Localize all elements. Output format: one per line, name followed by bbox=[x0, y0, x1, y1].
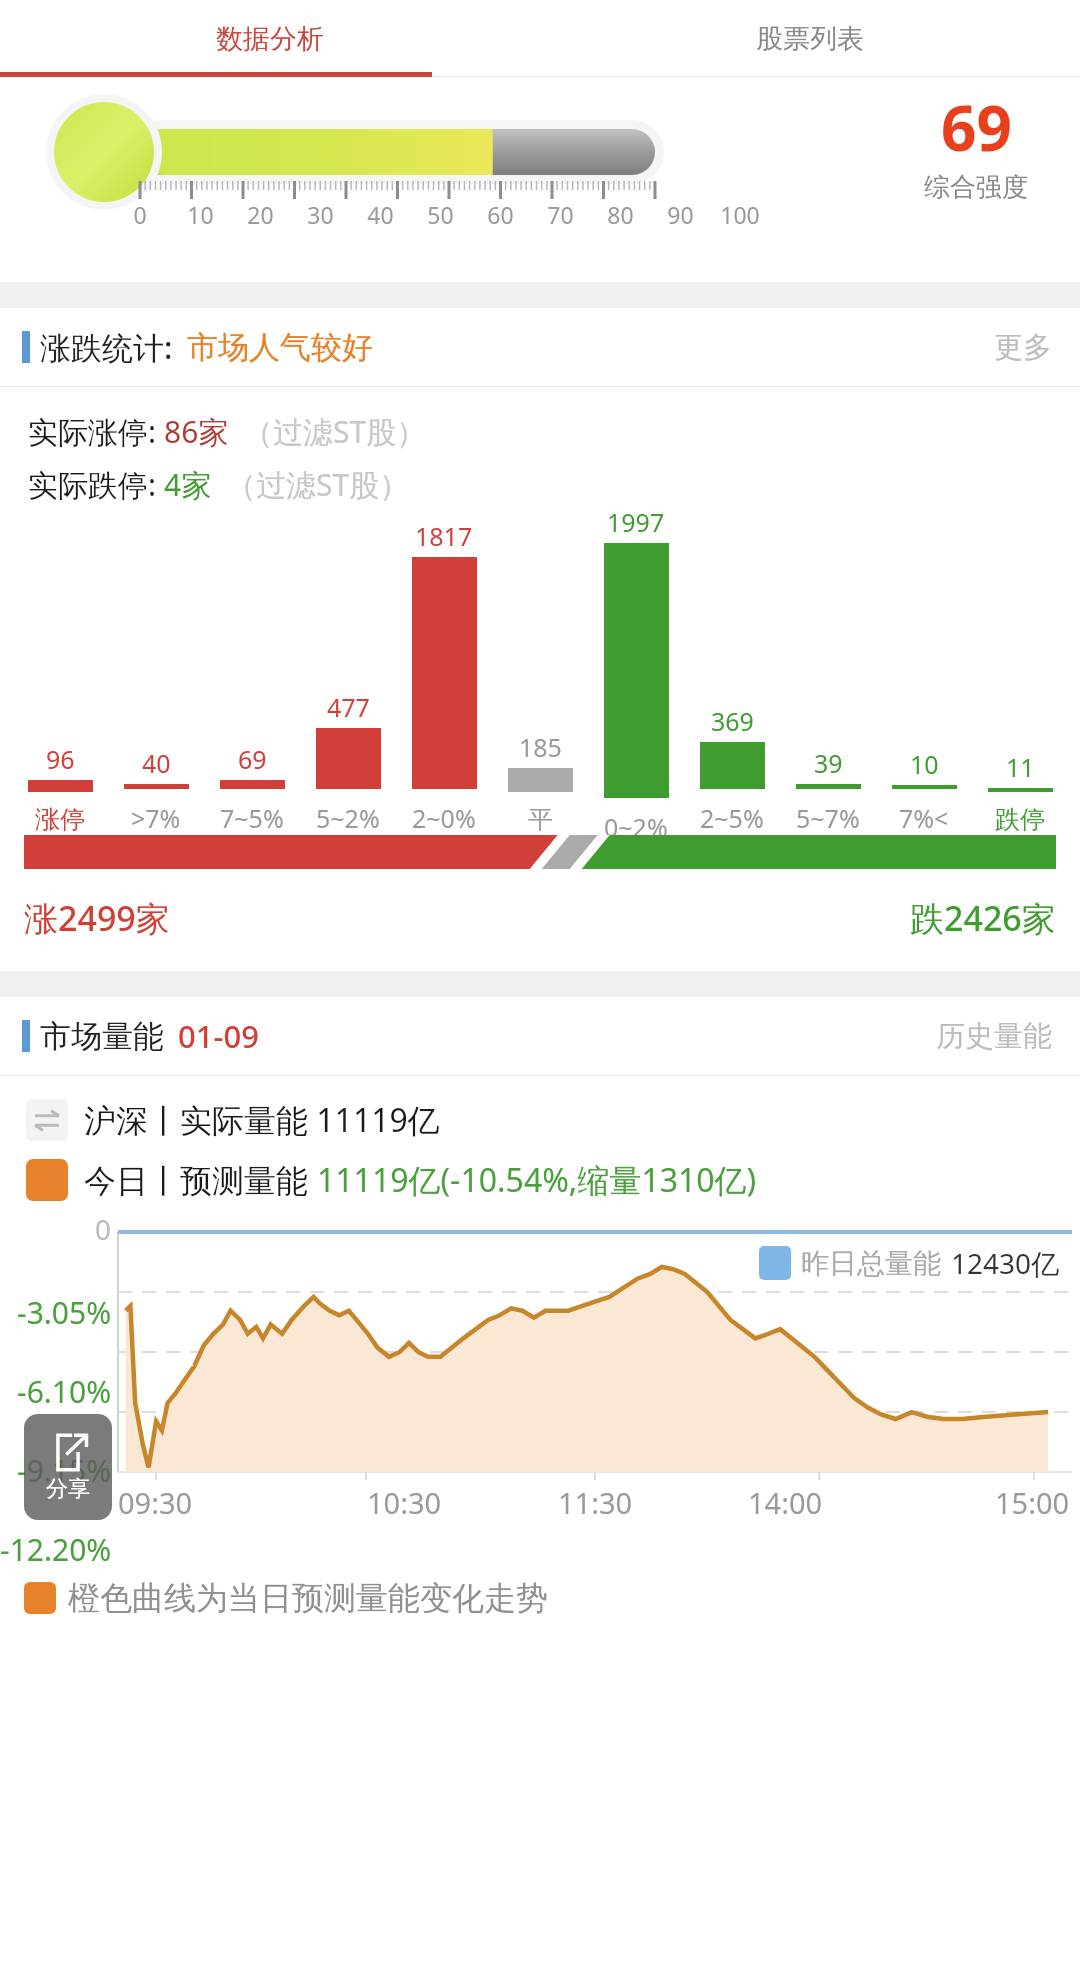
staticText: 2~0% bbox=[412, 801, 476, 835]
button[interactable]: 数据分析 bbox=[0, 0, 540, 77]
staticText: 1997 bbox=[607, 505, 665, 539]
staticText: 橙色曲线为当日预测量能变化走势 bbox=[68, 1578, 548, 1618]
button[interactable]: 1997 bbox=[588, 505, 684, 835]
staticText: 5~2% bbox=[316, 801, 380, 835]
staticText: 11 bbox=[1006, 750, 1035, 784]
staticText: 今日丨预测量能 bbox=[84, 1158, 317, 1202]
staticText: 10 bbox=[187, 199, 214, 230]
staticText: 4家 bbox=[164, 464, 212, 505]
staticText: 综合强度 bbox=[924, 171, 1028, 204]
staticText: 86家 bbox=[164, 411, 229, 452]
button[interactable]: 10 bbox=[876, 505, 972, 835]
staticText: -3.05% bbox=[17, 1292, 112, 1333]
staticText: 市场量能 bbox=[40, 1017, 164, 1056]
staticText: 60 bbox=[487, 199, 514, 230]
staticText: 39 bbox=[814, 746, 843, 780]
staticText: 369 bbox=[711, 704, 754, 738]
staticText: 1817 bbox=[415, 519, 473, 553]
staticText: 30 bbox=[307, 199, 334, 230]
staticText: 100 bbox=[720, 199, 760, 230]
button[interactable]: 历史量能 bbox=[930, 1012, 1058, 1061]
staticText: 10 bbox=[910, 747, 939, 781]
button[interactable]: 1817 bbox=[396, 505, 492, 835]
button[interactable]: 11 bbox=[972, 505, 1068, 835]
staticText: 股票列表 bbox=[756, 22, 864, 56]
button[interactable]: 477 bbox=[300, 505, 396, 835]
button[interactable]: 96 bbox=[12, 505, 108, 835]
staticText: 涨停 bbox=[35, 804, 85, 835]
button[interactable]: 股票列表 bbox=[540, 0, 1080, 77]
staticText: 历史量能 bbox=[936, 1018, 1052, 1055]
staticText: -9.15% bbox=[17, 1450, 112, 1491]
staticText: 7~5% bbox=[220, 801, 284, 835]
staticText: 0 bbox=[95, 1210, 112, 1248]
staticText: 80 bbox=[607, 199, 634, 230]
staticText: 5~7% bbox=[796, 801, 860, 835]
staticText: 实际跌停: bbox=[28, 464, 164, 505]
staticText: 69 bbox=[941, 85, 1012, 169]
staticText: 40 bbox=[367, 199, 394, 230]
staticText: 0 bbox=[133, 199, 147, 230]
staticText: 7%< bbox=[899, 801, 949, 835]
button[interactable]: 69 bbox=[204, 505, 300, 835]
staticText: 90 bbox=[667, 199, 694, 230]
staticText: 分享 bbox=[46, 1475, 90, 1503]
staticText: 平 bbox=[528, 804, 553, 835]
staticText: 96 bbox=[46, 742, 75, 776]
staticText: 01-09 bbox=[178, 1015, 259, 1057]
button[interactable]: 185 bbox=[492, 505, 588, 835]
staticText: 50 bbox=[427, 199, 454, 230]
staticText: 实际涨停: bbox=[28, 411, 164, 452]
staticText: 11119亿(-10.54%,缩量1310亿) bbox=[317, 1158, 757, 1202]
staticText: 185 bbox=[519, 730, 562, 764]
button[interactable]: 分享 bbox=[24, 1414, 112, 1520]
staticText: 数据分析 bbox=[216, 22, 324, 56]
staticText: 11:30 bbox=[558, 1483, 633, 1522]
staticText: 0~2% bbox=[604, 810, 668, 835]
staticText: 涨跌统计: bbox=[40, 326, 173, 368]
staticText: 40 bbox=[142, 746, 171, 780]
staticText: -12.20% bbox=[0, 1529, 112, 1570]
button[interactable]: 沪深丨实际量能 11119亿 bbox=[26, 1098, 440, 1142]
staticText: 69 bbox=[238, 742, 267, 776]
staticText: 09:30 bbox=[118, 1483, 193, 1522]
button[interactable]: 39 bbox=[780, 505, 876, 835]
button[interactable]: 369 bbox=[684, 505, 780, 835]
button[interactable]: 更多 bbox=[988, 323, 1058, 372]
staticText: 10:30 bbox=[367, 1483, 442, 1522]
staticText: 15:00 bbox=[995, 1483, 1070, 1522]
staticText: 跌停 bbox=[995, 804, 1045, 835]
staticText: 跌2426家 bbox=[910, 895, 1056, 941]
staticText: 477 bbox=[327, 690, 370, 724]
staticText: 2~5% bbox=[700, 801, 764, 835]
staticText: 20 bbox=[247, 199, 274, 230]
staticText: 昨日总量能 bbox=[801, 1246, 941, 1281]
staticText: 12430亿 bbox=[951, 1244, 1060, 1282]
button[interactable]: 今日丨预测量能 bbox=[26, 1158, 757, 1202]
staticText: 涨2499家 bbox=[24, 895, 170, 941]
button[interactable]: 40 bbox=[108, 505, 204, 835]
staticText: （过滤ST股） bbox=[226, 464, 410, 505]
staticText: >7% bbox=[131, 801, 181, 835]
staticText: 14:00 bbox=[748, 1483, 823, 1522]
staticText: 沪深丨实际量能 11119亿 bbox=[84, 1098, 440, 1142]
staticText: 70 bbox=[547, 199, 574, 230]
staticText: 更多 bbox=[994, 329, 1052, 366]
staticText: 市场人气较好 bbox=[187, 328, 373, 367]
staticText: （过滤ST股） bbox=[243, 411, 427, 452]
staticText: -6.10% bbox=[17, 1371, 112, 1412]
